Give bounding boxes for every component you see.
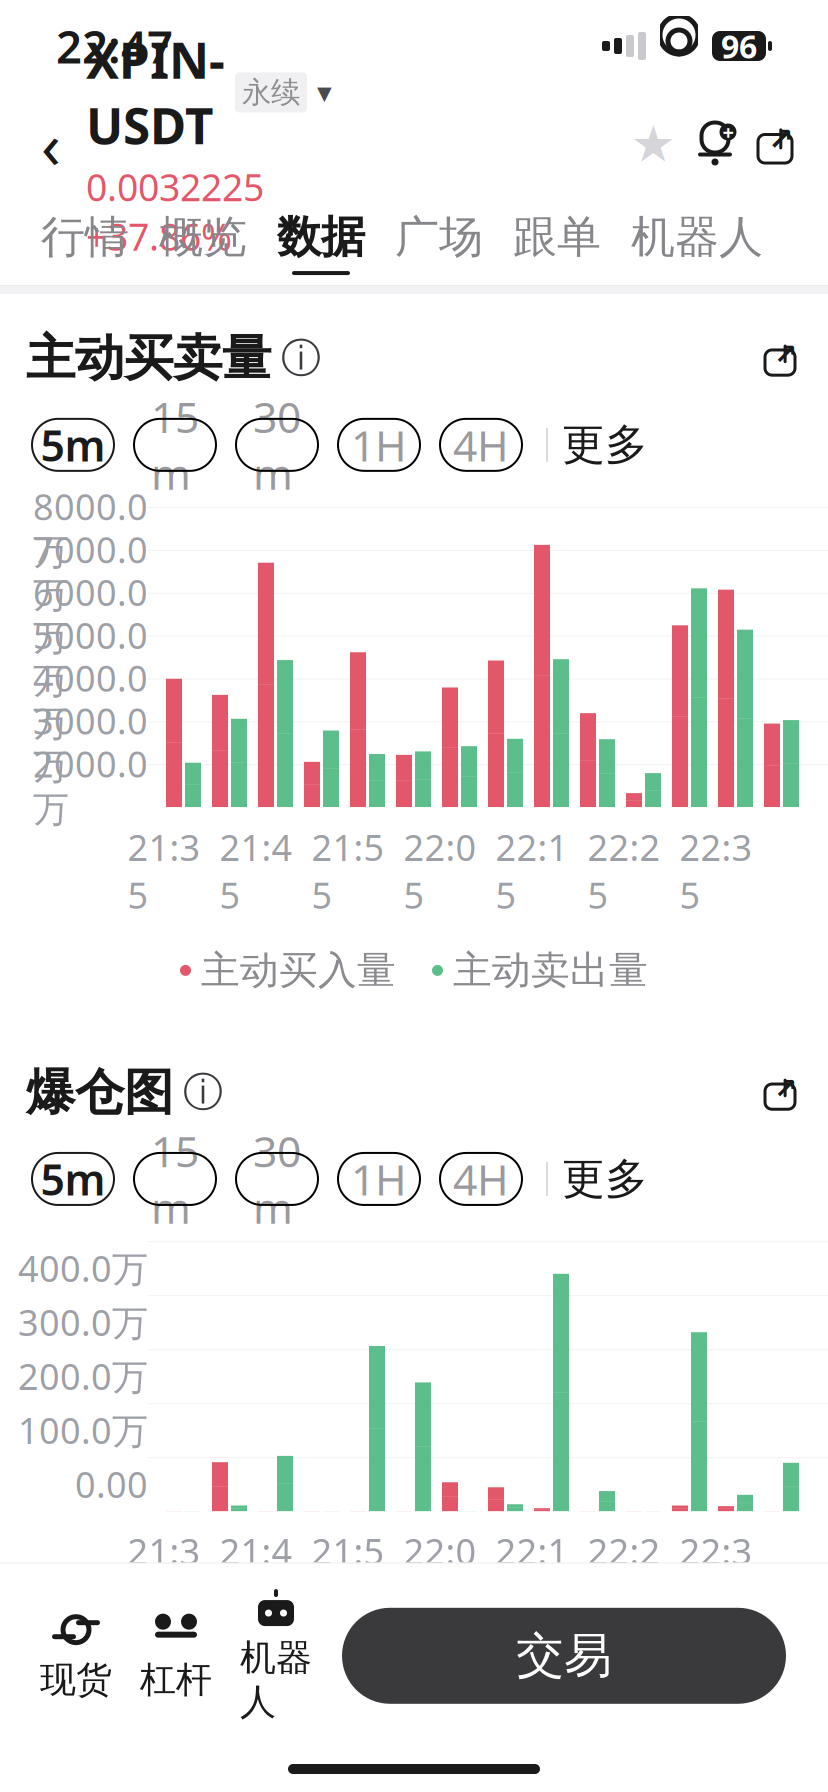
button[interactable]: 30m xyxy=(226,1153,328,1205)
staticText: ★ xyxy=(630,115,675,173)
staticText: 400.0万 xyxy=(18,1244,148,1292)
staticText: 更多 xyxy=(562,1153,648,1205)
staticText: 杠杆 xyxy=(140,1658,212,1702)
staticText: 22:35 xyxy=(679,823,752,919)
staticText: 22:15 xyxy=(495,823,568,919)
staticText: 22:05 xyxy=(403,1527,476,1623)
staticText: 广场 xyxy=(395,210,483,264)
staticText: 主动买入量 xyxy=(201,947,396,994)
staticText: ▾ xyxy=(317,76,332,109)
staticText: ⓘ xyxy=(183,1068,223,1117)
button[interactable]: 4H xyxy=(430,419,532,471)
button[interactable]: 跟单 xyxy=(498,196,616,285)
staticText: 30m xyxy=(253,1122,301,1236)
button[interactable]: 5m xyxy=(22,419,124,471)
button[interactable]: 更多 xyxy=(562,1143,648,1215)
staticText: 22:35 xyxy=(679,1527,752,1623)
button[interactable]: Expand chart xyxy=(758,1070,802,1114)
button[interactable]: 机器人 xyxy=(226,1582,326,1730)
staticText: 0.00 xyxy=(75,1460,148,1508)
button[interactable]: 15m xyxy=(124,419,226,471)
staticText: 5m xyxy=(40,416,105,473)
staticText: 21:35 xyxy=(127,823,200,919)
staticText: 22:05 xyxy=(403,823,476,919)
staticText: 1H xyxy=(351,1151,407,1207)
button[interactable]: 更多 xyxy=(562,409,648,481)
button[interactable]: Share xyxy=(746,109,804,179)
staticText: 22:47 xyxy=(56,16,173,76)
button[interactable]: 机器人 xyxy=(616,196,778,285)
staticText: 4000.0万 xyxy=(33,654,148,746)
button[interactable]: 交易 xyxy=(342,1608,786,1704)
button[interactable]: 30m xyxy=(226,419,328,471)
button[interactable]: 数据 xyxy=(262,196,380,285)
staticText: 4H xyxy=(453,416,509,473)
staticText: 15m xyxy=(151,1122,199,1236)
staticText: 22:25 xyxy=(587,1527,660,1623)
button[interactable]: 广场 xyxy=(380,196,498,285)
button[interactable]: 杠杆 xyxy=(126,1604,226,1708)
staticText: 现货 xyxy=(40,1658,112,1702)
button[interactable]: 4H xyxy=(430,1153,532,1205)
staticText: 96 xyxy=(721,25,757,67)
button[interactable]: Expand chart xyxy=(758,336,802,380)
staticText: ⓘ xyxy=(281,334,321,383)
staticText: 行情 xyxy=(41,210,129,264)
staticText: 21:55 xyxy=(311,823,384,919)
staticText: 15m xyxy=(151,388,199,501)
staticText: 空仓爆仓额 xyxy=(453,1651,648,1698)
button[interactable]: 1H xyxy=(328,419,430,471)
staticText: 21:35 xyxy=(127,1527,200,1623)
staticText: 机器人 xyxy=(240,1636,312,1724)
button[interactable]: Alerts xyxy=(684,109,746,179)
staticText: 21:45 xyxy=(219,823,292,919)
button[interactable]: 5m xyxy=(22,1153,124,1205)
staticText: 主动买卖量 xyxy=(26,328,271,389)
button[interactable]: 概览 xyxy=(144,196,262,285)
button[interactable]: Favorite xyxy=(622,109,684,179)
staticText: 数据 xyxy=(277,210,365,264)
staticText: 交易 xyxy=(516,1626,612,1685)
staticText: 0.0032225 +37.86% xyxy=(86,162,264,261)
staticText: + xyxy=(722,119,733,145)
button[interactable]: 现货 xyxy=(26,1604,126,1708)
button[interactable]: 行情 xyxy=(26,196,144,285)
staticText: 5m xyxy=(40,1151,105,1207)
staticText: 7000.0万 xyxy=(33,525,148,617)
staticText: 8000.0万 xyxy=(33,482,148,574)
staticText: 22:25 xyxy=(587,823,660,919)
staticText: 21:45 xyxy=(219,1527,292,1623)
staticText: 机器人 xyxy=(631,210,763,264)
staticText: 21:55 xyxy=(311,1527,384,1623)
staticText: ↗ xyxy=(774,338,797,370)
staticText: 3000.0万 xyxy=(33,697,148,789)
staticText: 200.0万 xyxy=(18,1352,148,1400)
staticText: 跟单 xyxy=(513,210,601,264)
staticText: 100.0万 xyxy=(18,1406,148,1454)
staticText: ↗ xyxy=(768,122,794,157)
button[interactable]: Info xyxy=(173,1068,229,1117)
staticText: 300.0万 xyxy=(18,1298,148,1346)
staticText: ‹ xyxy=(41,101,61,186)
button[interactable]: Back xyxy=(24,109,78,179)
button[interactable]: 15m xyxy=(124,1153,226,1205)
staticText: 5000.0万 xyxy=(33,611,148,703)
staticText: 爆仓图 xyxy=(26,1062,173,1123)
staticText: 多仓爆仓额 xyxy=(201,1651,396,1698)
staticText: 主动卖出量 xyxy=(453,947,648,994)
staticText: 2000.0万 xyxy=(33,740,148,832)
staticText: ↗ xyxy=(774,1072,797,1104)
staticText: 概览 xyxy=(159,210,247,264)
staticText: 永续 xyxy=(242,74,300,110)
staticText: 6000.0万 xyxy=(33,568,148,660)
staticText: XPINUSDT xyxy=(86,27,225,158)
staticText: 1H xyxy=(351,416,407,473)
staticText: 30m xyxy=(253,388,301,501)
staticText: 22:15 xyxy=(495,1527,568,1623)
button[interactable]: 1H xyxy=(328,1153,430,1205)
staticText: 4H xyxy=(453,1151,509,1207)
button[interactable]: Info xyxy=(271,334,327,383)
staticText: 更多 xyxy=(562,419,648,471)
